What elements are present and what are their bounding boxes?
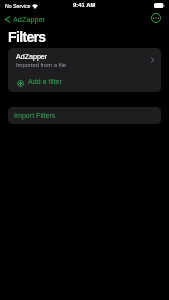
staticText: No Service <box>5 3 31 9</box>
button[interactable]: AdZapper <box>0 13 52 25</box>
button[interactable]: AdZapper <box>8 48 161 72</box>
staticText: Imported from a file <box>16 62 66 68</box>
staticText: AdZapper <box>13 15 46 23</box>
staticText: Filters <box>8 29 46 45</box>
button[interactable]: Add a filter <box>8 72 161 92</box>
button[interactable]: More options <box>151 13 161 23</box>
staticText: Import Filters <box>14 112 56 120</box>
button[interactable]: Import Filters <box>8 107 161 124</box>
staticText: AdZapper <box>16 53 48 61</box>
staticText: Add a filter <box>28 78 62 86</box>
staticText: 9:41 AM <box>73 2 96 9</box>
